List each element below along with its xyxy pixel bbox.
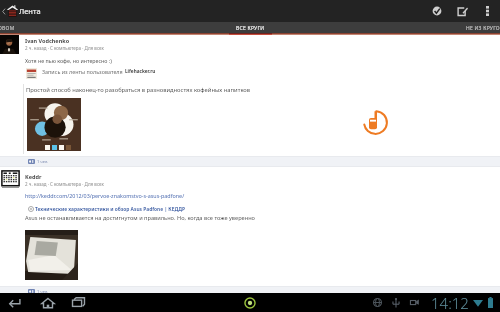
button[interactable]: Технические характеристики и обзор Asus … <box>35 206 186 213</box>
staticText: ВСЕ КРУГИ <box>236 25 265 32</box>
staticText: 1 чел. <box>37 159 49 164</box>
button[interactable]: Check in <box>427 0 447 22</box>
button[interactable]: 1 чел. <box>28 287 49 296</box>
button[interactable]: Лента <box>0 0 45 22</box>
staticText: Keddr <box>25 173 42 180</box>
staticText: Хотя не пью кофе, но интересно :) <box>25 57 112 64</box>
button[interactable]: Keddr <box>25 173 42 180</box>
staticText: Asus не останавливается на достигнутом и… <box>25 214 255 222</box>
button[interactable]: Ivan Vodchenko <box>25 37 70 44</box>
button[interactable]: http://keddr.com/2012/03/pervoe-znakomst… <box>25 192 185 199</box>
button[interactable]: Recent apps <box>68 293 89 312</box>
staticText: НЕ ИЗ КРУГОВ <box>466 25 500 32</box>
button[interactable]: Compose post <box>452 0 472 22</box>
button[interactable]: ВСЕ КРУГИ <box>224 22 276 35</box>
staticText: 1 чел. <box>37 289 49 294</box>
button[interactable]: 1 чел. <box>28 157 49 166</box>
button[interactable]: В НОВОМ <box>0 22 28 35</box>
staticText: Лента <box>19 6 41 16</box>
button[interactable]: Back <box>5 293 26 312</box>
staticText: Простой способ наконец-то разобраться в … <box>26 86 251 94</box>
staticText: В НОВОМ <box>0 25 15 32</box>
button[interactable]: More options <box>478 0 496 22</box>
staticText: Ivan Vodchenko <box>25 37 70 44</box>
staticText: Технические характеристики и обзор Asus … <box>35 206 186 213</box>
staticText: 14:12 <box>431 293 469 312</box>
staticText: Запись из ленты пользователя <box>42 68 125 75</box>
staticText: http://keddr.com/2012/03/pervoe-znakomst… <box>25 192 185 199</box>
staticText: 2 ч. назад · С компьютера · Для всех <box>25 45 104 51</box>
staticText: 2 ч. назад · С компьютера · Для всех <box>25 181 104 187</box>
staticText: Lifehacker.ru <box>125 68 156 74</box>
other: Loading <box>363 110 388 135</box>
button[interactable]: Home <box>37 293 58 312</box>
button[interactable]: НЕ ИЗ КРУГОВ <box>459 22 500 35</box>
